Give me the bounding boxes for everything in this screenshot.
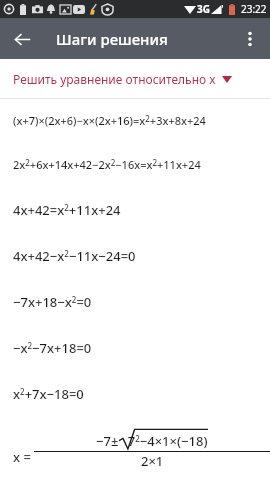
staticText: 4x+42=x2+11x+24 <box>13 201 121 219</box>
staticText: −7± <box>96 432 119 450</box>
button[interactable]: Решить уравнение относительно x <box>0 59 270 98</box>
button[interactable]: x2+7x−18=0 <box>0 371 270 417</box>
button[interactable]: More options <box>232 21 268 57</box>
staticText: 2×1 <box>141 452 164 470</box>
button[interactable]: Back <box>4 21 40 57</box>
button[interactable]: (x+7)×(2x+6)−x×(2x+16)=x2+3x+8x+24 <box>0 99 270 143</box>
button[interactable]: x = <box>0 417 270 470</box>
staticText: x2+7x−18=0 <box>13 385 84 403</box>
staticText: 2x2+6x+14x+42−2x2−16x=x2+11x+24 <box>13 157 201 173</box>
staticText: 72−4×1×(−18) <box>121 432 208 450</box>
button[interactable]: 2x2+6x+14x+42−2x2−16x=x2+11x+24 <box>0 143 270 187</box>
button[interactable]: −x2−7x+18=0 <box>0 325 270 371</box>
staticText: −x2−7x+18=0 <box>13 339 92 357</box>
staticText: (x+7)×(2x+6)−x×(2x+16)=x2+3x+8x+24 <box>13 113 206 129</box>
staticText: 3G <box>197 2 210 16</box>
staticText: 23:22 <box>241 2 267 16</box>
button[interactable]: −7x+18−x2=0 <box>0 279 270 325</box>
button[interactable]: 4x+42=x2+11x+24 <box>0 187 270 233</box>
staticText: −7x+18−x2=0 <box>13 293 92 311</box>
staticText: Решить уравнение относительно x <box>13 71 216 87</box>
staticText: 4x+42−x2−11x−24=0 <box>13 247 136 265</box>
staticText: Шаги решения <box>56 29 168 49</box>
staticText: x = <box>13 448 31 466</box>
button[interactable]: 4x+42−x2−11x−24=0 <box>0 233 270 279</box>
